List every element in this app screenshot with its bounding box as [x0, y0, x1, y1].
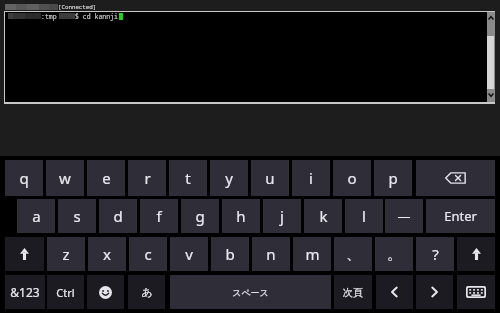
- button[interactable]: b: [211, 237, 249, 271]
- button[interactable]: Emoji: [87, 275, 124, 309]
- staticText: l: [362, 206, 366, 226]
- button[interactable]: y: [210, 160, 248, 196]
- staticText: h: [236, 206, 246, 226]
- button[interactable]: Enter: [426, 199, 495, 233]
- button[interactable]: e: [87, 160, 125, 196]
- button[interactable]: z: [47, 237, 85, 271]
- button[interactable]: v: [170, 237, 208, 271]
- staticText: ?: [432, 244, 439, 264]
- button[interactable]: Ctrl: [47, 275, 84, 309]
- button[interactable]: Shift: [5, 237, 44, 271]
- staticText: &123: [10, 284, 40, 300]
- staticText: 次頁: [343, 286, 363, 299]
- button[interactable]: q: [5, 160, 43, 196]
- staticText: n: [266, 244, 276, 264]
- staticText: f: [156, 206, 162, 226]
- staticText: [Connected]: [58, 3, 97, 11]
- button[interactable]: j: [263, 199, 301, 233]
- button[interactable]: Next: [416, 275, 453, 309]
- button[interactable]: c: [129, 237, 167, 271]
- staticText: b: [225, 244, 235, 264]
- staticText: g: [195, 206, 205, 226]
- staticText: y: [225, 168, 233, 188]
- button[interactable]: t: [169, 160, 207, 196]
- staticText: e: [102, 168, 111, 188]
- button[interactable]: r: [128, 160, 166, 196]
- button[interactable]: Hide keyboard: [457, 275, 495, 309]
- button[interactable]: Shift: [457, 237, 495, 271]
- button[interactable]: a: [17, 199, 55, 233]
- staticText: —: [397, 207, 411, 225]
- button[interactable]: 、: [334, 237, 372, 271]
- staticText: v: [185, 244, 193, 264]
- button[interactable]: h: [222, 199, 260, 233]
- button[interactable]: Previous: [376, 275, 413, 309]
- staticText: Enter: [444, 207, 477, 225]
- button[interactable]: 。: [375, 237, 413, 271]
- staticText: z: [62, 244, 70, 264]
- staticText: j: [280, 206, 284, 226]
- button[interactable]: i: [292, 160, 330, 196]
- staticText: 。: [387, 245, 402, 264]
- staticText: m: [305, 244, 320, 264]
- staticText: p: [388, 168, 398, 188]
- staticText: あ: [141, 285, 153, 299]
- button[interactable]: u: [251, 160, 289, 196]
- button[interactable]: m: [293, 237, 331, 271]
- button[interactable]: p: [374, 160, 412, 196]
- staticText: c: [144, 244, 152, 264]
- staticText: :tmp: [41, 12, 57, 21]
- staticText: 、: [346, 245, 361, 264]
- staticText: $ cd kannji: [75, 12, 118, 21]
- button[interactable]: Backspace: [416, 160, 495, 196]
- staticText: u: [265, 168, 275, 188]
- staticText: x: [103, 244, 111, 264]
- button[interactable]: Scroll up: [487, 12, 495, 24]
- staticText: r: [144, 168, 151, 188]
- staticText: o: [347, 168, 357, 188]
- button[interactable]: n: [252, 237, 290, 271]
- staticText: w: [59, 168, 71, 188]
- button[interactable]: l: [345, 199, 383, 233]
- button[interactable]: Scroll down: [487, 89, 495, 100]
- staticText: スペース: [232, 287, 269, 298]
- staticText: s: [73, 206, 81, 226]
- staticText: d: [113, 206, 123, 226]
- button[interactable]: x: [88, 237, 126, 271]
- staticText: q: [19, 168, 29, 188]
- button[interactable]: f: [140, 199, 178, 233]
- button[interactable]: あ: [128, 275, 165, 309]
- staticText: k: [319, 206, 328, 226]
- button[interactable]: スペース: [170, 275, 331, 309]
- button[interactable]: o: [333, 160, 371, 196]
- button[interactable]: 次頁: [334, 275, 372, 309]
- staticText: a: [32, 206, 41, 226]
- button[interactable]: s: [58, 199, 96, 233]
- button[interactable]: w: [46, 160, 84, 196]
- button[interactable]: &123: [5, 275, 45, 309]
- button[interactable]: —: [385, 199, 423, 233]
- button[interactable]: d: [99, 199, 137, 233]
- button[interactable]: ?: [416, 237, 454, 271]
- staticText: Ctrl: [56, 285, 75, 300]
- button[interactable]: k: [304, 199, 342, 233]
- staticText: t: [185, 168, 191, 188]
- button[interactable]: g: [181, 199, 219, 233]
- staticText: i: [309, 168, 313, 188]
